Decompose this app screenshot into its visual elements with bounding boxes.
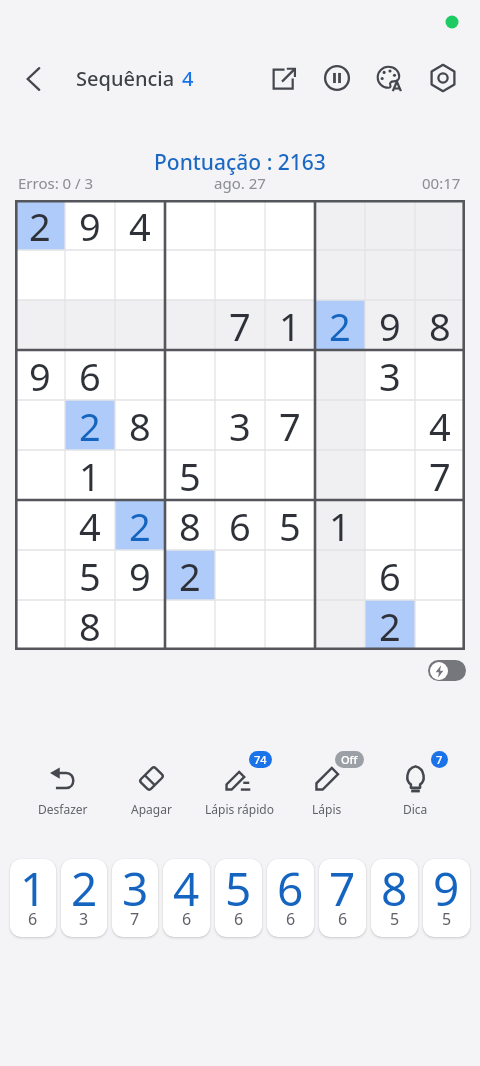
button[interactable]: 2 bbox=[65, 400, 115, 450]
button[interactable]: 8 bbox=[115, 400, 165, 450]
button[interactable] bbox=[15, 400, 65, 450]
button[interactable]: 5 bbox=[165, 450, 215, 500]
button[interactable]: 1 bbox=[315, 500, 365, 550]
button[interactable]: 4 bbox=[163, 859, 210, 937]
button[interactable] bbox=[315, 200, 365, 250]
button[interactable] bbox=[365, 400, 415, 450]
button[interactable]: 9 bbox=[15, 350, 65, 400]
button[interactable]: 7 bbox=[415, 450, 465, 500]
button[interactable]: Desfazer bbox=[19, 760, 107, 817]
button[interactable] bbox=[165, 200, 215, 250]
button[interactable]: Auto check toggle bbox=[428, 660, 466, 681]
button[interactable]: Apagar bbox=[107, 760, 195, 817]
button[interactable]: Theme bbox=[363, 53, 416, 103]
button[interactable]: 1 bbox=[65, 450, 115, 500]
button[interactable] bbox=[165, 400, 215, 450]
button[interactable]: 6 bbox=[65, 350, 115, 400]
button[interactable]: 9 bbox=[115, 550, 165, 600]
button[interactable] bbox=[315, 250, 365, 300]
button[interactable] bbox=[415, 500, 465, 550]
button[interactable]: 9 bbox=[423, 859, 470, 937]
button[interactable]: 5 bbox=[215, 859, 262, 937]
button[interactable]: 2 bbox=[315, 300, 365, 350]
button[interactable] bbox=[365, 450, 415, 500]
button[interactable] bbox=[265, 350, 315, 400]
button[interactable] bbox=[415, 600, 465, 650]
button[interactable] bbox=[265, 550, 315, 600]
button[interactable]: 5 bbox=[265, 500, 315, 550]
button[interactable] bbox=[265, 450, 315, 500]
button[interactable] bbox=[315, 400, 365, 450]
button[interactable]: 7 bbox=[215, 300, 265, 350]
button[interactable] bbox=[315, 550, 365, 600]
button[interactable]: 2 bbox=[115, 500, 165, 550]
button[interactable]: 7 bbox=[265, 400, 315, 450]
button[interactable] bbox=[65, 300, 115, 350]
button[interactable] bbox=[265, 600, 315, 650]
button[interactable] bbox=[215, 200, 265, 250]
button[interactable] bbox=[165, 300, 215, 350]
button[interactable]: 5 bbox=[65, 550, 115, 600]
button[interactable]: 2 bbox=[365, 600, 415, 650]
button[interactable]: 6 bbox=[267, 859, 314, 937]
button[interactable] bbox=[165, 600, 215, 650]
button[interactable]: 4 bbox=[415, 400, 465, 450]
button[interactable]: 8 bbox=[65, 600, 115, 650]
button[interactable]: 6 bbox=[215, 500, 265, 550]
button[interactable]: 3 bbox=[112, 859, 158, 937]
button[interactable]: 6 bbox=[365, 550, 415, 600]
button[interactable]: 7 bbox=[371, 760, 459, 817]
button[interactable]: 1 bbox=[265, 300, 315, 350]
button[interactable]: 9 bbox=[365, 300, 415, 350]
button[interactable] bbox=[165, 350, 215, 400]
button[interactable]: 1 bbox=[10, 859, 56, 937]
button[interactable]: 2 bbox=[61, 859, 107, 937]
button[interactable]: 74 bbox=[195, 760, 283, 817]
button[interactable]: 3 bbox=[365, 350, 415, 400]
button[interactable] bbox=[365, 200, 415, 250]
button[interactable]: 8 bbox=[415, 300, 465, 350]
button[interactable]: Share bbox=[257, 53, 310, 103]
button[interactable] bbox=[415, 250, 465, 300]
button[interactable] bbox=[315, 350, 365, 400]
button[interactable]: Off bbox=[283, 760, 371, 817]
button[interactable] bbox=[115, 350, 165, 400]
button[interactable]: 2 bbox=[15, 200, 65, 250]
button[interactable] bbox=[15, 600, 65, 650]
button[interactable]: 2 bbox=[165, 550, 215, 600]
button[interactable] bbox=[115, 300, 165, 350]
button[interactable] bbox=[315, 600, 365, 650]
button[interactable] bbox=[15, 500, 65, 550]
button[interactable]: 7 bbox=[319, 859, 366, 937]
button[interactable] bbox=[265, 200, 315, 250]
button[interactable] bbox=[215, 350, 265, 400]
button[interactable] bbox=[215, 250, 265, 300]
button[interactable]: 4 bbox=[65, 500, 115, 550]
button[interactable] bbox=[15, 300, 65, 350]
button[interactable]: 9 bbox=[65, 200, 115, 250]
button[interactable] bbox=[265, 250, 315, 300]
button[interactable] bbox=[15, 450, 65, 500]
button[interactable]: Pause bbox=[310, 53, 363, 103]
button[interactable] bbox=[415, 550, 465, 600]
button[interactable] bbox=[215, 550, 265, 600]
button[interactable] bbox=[115, 600, 165, 650]
button[interactable] bbox=[415, 200, 465, 250]
button[interactable] bbox=[115, 450, 165, 500]
button[interactable]: 3 bbox=[215, 400, 265, 450]
button[interactable]: Settings bbox=[416, 53, 469, 103]
button[interactable]: 8 bbox=[165, 500, 215, 550]
button[interactable] bbox=[365, 500, 415, 550]
button[interactable] bbox=[415, 350, 465, 400]
button[interactable] bbox=[215, 600, 265, 650]
button[interactable]: 8 bbox=[371, 859, 418, 937]
button[interactable] bbox=[65, 250, 115, 300]
button[interactable] bbox=[115, 250, 165, 300]
button[interactable]: 4 bbox=[115, 200, 165, 250]
button[interactable] bbox=[315, 450, 365, 500]
button[interactable]: Back bbox=[12, 57, 54, 99]
button[interactable] bbox=[15, 250, 65, 300]
button[interactable] bbox=[15, 550, 65, 600]
button[interactable] bbox=[215, 450, 265, 500]
